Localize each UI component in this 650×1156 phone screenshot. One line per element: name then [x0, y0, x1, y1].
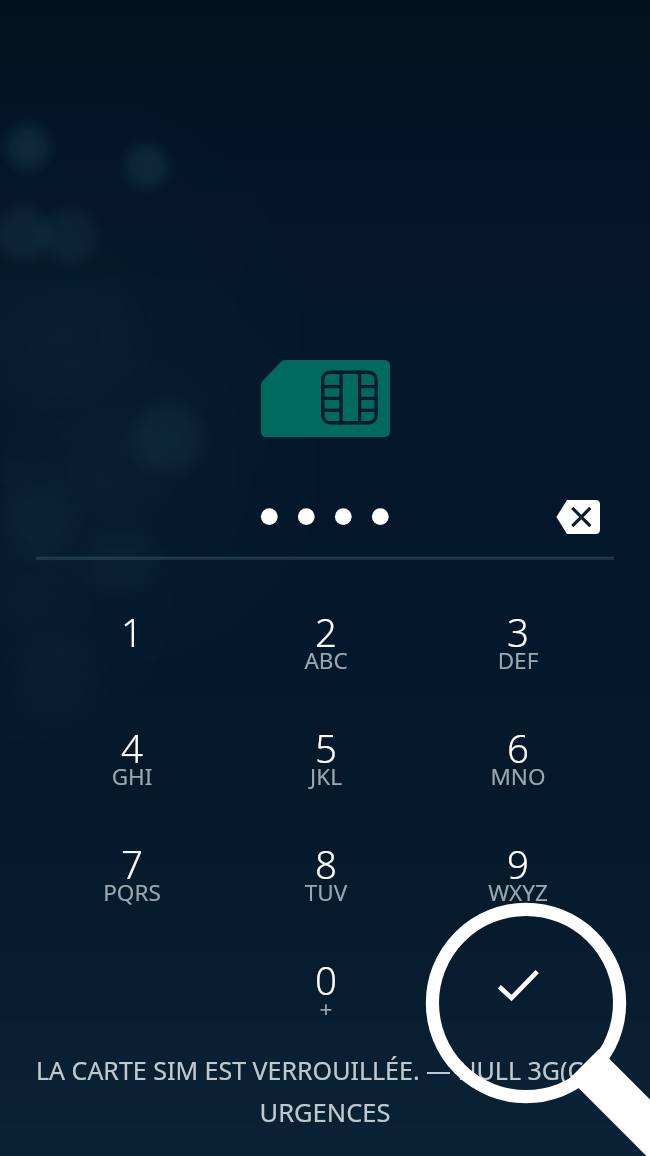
staticText: WXYZ — [423, 877, 613, 908]
staticText: 5 — [231, 722, 421, 774]
staticText: 0 — [231, 954, 421, 1006]
staticText: DEF — [423, 645, 613, 676]
staticText: PQRS — [37, 877, 227, 908]
button[interactable]: 0 — [231, 938, 421, 1050]
button[interactable]: 5 — [231, 706, 421, 818]
staticText: TUV — [231, 877, 421, 908]
staticText: 9 — [423, 838, 613, 890]
staticText: 7 — [37, 838, 227, 890]
button[interactable]: 1 — [37, 590, 227, 702]
staticText: 2 — [231, 606, 421, 658]
staticText: 6 — [423, 722, 613, 774]
staticText: JKL — [231, 761, 421, 792]
button[interactable]: 8 — [231, 822, 421, 934]
staticText: GHI — [37, 761, 227, 792]
staticText: 8 — [231, 838, 421, 890]
staticText: 4 — [37, 722, 227, 774]
button[interactable]: 2 — [231, 590, 421, 702]
staticText: URGENCES — [0, 1095, 650, 1130]
button[interactable]: Enter — [423, 942, 613, 1054]
staticText: ABC — [231, 645, 421, 676]
staticText: MNO — [423, 761, 613, 792]
button[interactable]: Delete — [523, 471, 633, 561]
button[interactable]: 3 — [423, 590, 613, 702]
button[interactable]: 4 — [37, 706, 227, 818]
button[interactable]: 9 — [423, 822, 613, 934]
button[interactable]: 6 — [423, 706, 613, 818]
staticText: LA CARTE SIM EST VERROUILLÉE. — NULL 3G(… — [36, 1053, 611, 1087]
staticText: 3 — [423, 606, 613, 658]
staticText: + — [231, 993, 421, 1024]
staticText: 1 — [37, 606, 227, 658]
button[interactable]: LA CARTE SIM EST VERROUILLÉE. — NULL 3G(… — [36, 1053, 636, 1087]
button[interactable]: 7 — [37, 822, 227, 934]
